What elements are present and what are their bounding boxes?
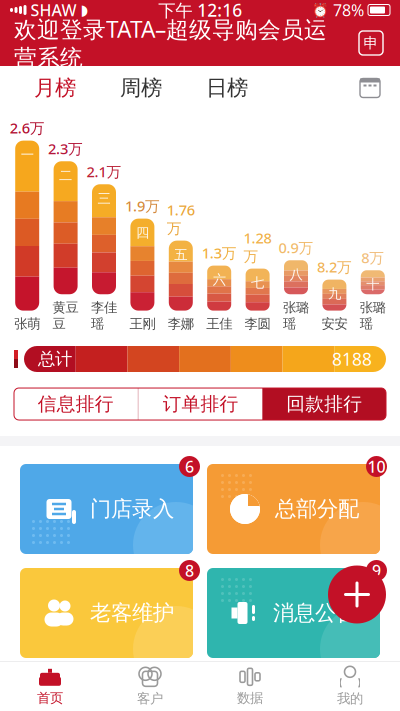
staticText: 六 [213, 272, 226, 288]
staticText: 回款排行 [286, 392, 362, 415]
staticText: 我的 [337, 690, 363, 707]
button[interactable]: 会员登记 [354, 26, 388, 60]
staticText: 李圆 [245, 316, 271, 332]
staticText: 一 [21, 147, 34, 163]
staticText: 9 [372, 560, 381, 581]
staticText: 8 [185, 560, 194, 581]
staticText: 1.76万 [167, 200, 195, 238]
button[interactable]: 消息公告 [207, 568, 380, 658]
staticText: 总部分配 [275, 496, 359, 522]
staticText: 九 [328, 286, 341, 302]
staticText: 二 [59, 167, 72, 184]
staticText: 1.9万 [125, 196, 160, 216]
staticText: 十 [366, 276, 379, 293]
staticText: 0.9万 [278, 238, 313, 257]
staticText: 2.6万 [10, 118, 45, 138]
staticText: 78% [333, 0, 364, 21]
staticText: 张璐瑶 [283, 299, 309, 332]
staticText: 四 [136, 225, 149, 241]
staticText: 张璐瑶 [360, 299, 386, 332]
button[interactable]: 选择日期 [350, 66, 390, 110]
staticText: 8万 [361, 248, 384, 267]
button[interactable]: 首页 [0, 662, 100, 711]
staticText: 七 [251, 275, 264, 291]
staticText: 2.1万 [86, 162, 121, 181]
staticText: 李佳瑶 [91, 299, 117, 332]
staticText: 月榜 [34, 75, 76, 101]
staticText: 八 [289, 266, 302, 283]
staticText: 门店录入 [90, 496, 174, 522]
button[interactable]: 总部分配 [207, 464, 380, 554]
staticText: 1.28万 [244, 228, 272, 266]
staticText: 客户 [137, 690, 163, 707]
staticText: 1.3万 [202, 243, 237, 263]
staticText: 10 [367, 456, 385, 477]
staticText: 2.3万 [48, 139, 83, 158]
staticText: 三 [97, 190, 110, 207]
button[interactable]: 信息排行 [14, 388, 138, 420]
staticText: 五 [174, 247, 187, 263]
button[interactable]: 新建 [328, 565, 386, 623]
staticText: ⏰ [312, 2, 329, 18]
staticText: 申 [363, 34, 378, 52]
staticText: 老客维护 [90, 600, 174, 626]
staticText: 张萌 [14, 316, 40, 332]
button[interactable]: 订单排行 [139, 388, 262, 420]
staticText: 首页 [37, 690, 63, 706]
staticText: 王刚 [129, 316, 155, 332]
button[interactable]: 我的 [300, 662, 400, 711]
staticText: 下午 12:16 [158, 0, 242, 21]
button[interactable]: 月榜 [12, 66, 98, 110]
staticText: 安安 [321, 316, 347, 332]
staticText: 6 [185, 456, 194, 477]
staticText: 8188 [332, 347, 372, 370]
staticText: 欢迎登录TATA–超级导购会员运营系统 [14, 14, 327, 72]
staticText: 消息公告 [273, 600, 357, 626]
staticText: 订单排行 [162, 392, 238, 415]
staticText: 8.2万 [317, 257, 352, 277]
button[interactable]: 回款排行 [262, 388, 386, 420]
button[interactable]: 日榜 [184, 66, 270, 110]
button[interactable]: 客户 [100, 662, 200, 711]
staticText: 王佳 [206, 316, 232, 332]
button[interactable]: 周榜 [98, 66, 184, 110]
staticText: 数据 [237, 690, 263, 706]
staticText: 黄豆豆 [53, 299, 79, 332]
staticText: 李娜 [168, 316, 194, 332]
button[interactable]: 老客维护 [20, 568, 193, 658]
staticText: 信息排行 [38, 392, 114, 415]
button[interactable]: 数据 [200, 662, 300, 711]
staticText: SHAW [30, 0, 76, 21]
staticText: 总计 [38, 348, 72, 370]
staticText: 周榜 [120, 75, 162, 101]
staticText: ◗ [80, 2, 88, 18]
staticText: 日榜 [206, 75, 248, 101]
button[interactable]: 门店录入 [20, 464, 193, 554]
